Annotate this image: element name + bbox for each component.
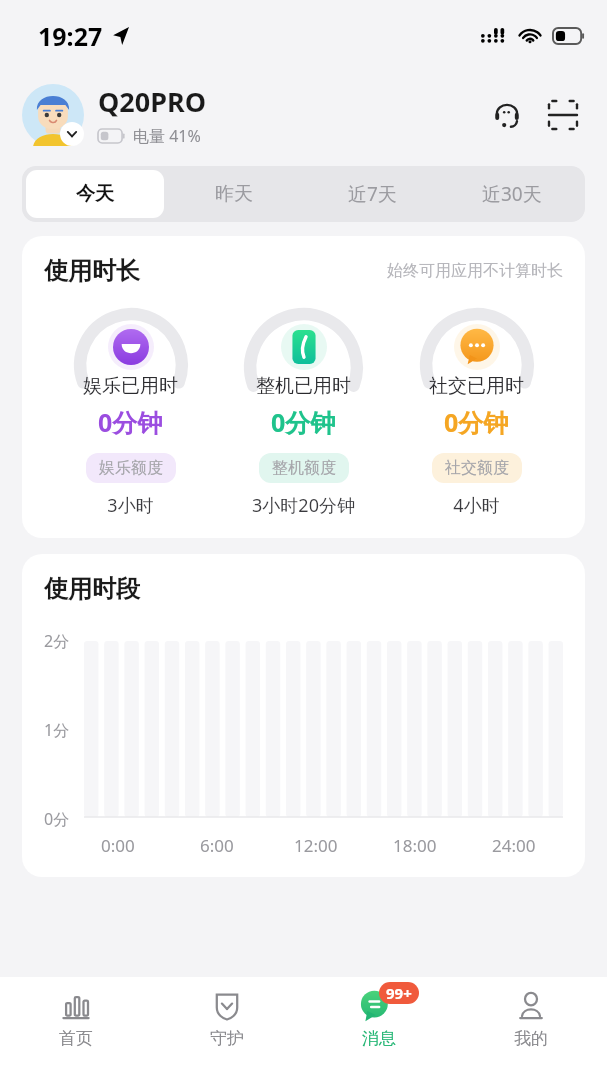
button[interactable]: Switch device	[60, 122, 84, 146]
button[interactable]: 今天	[26, 170, 164, 218]
staticText: 1分	[44, 719, 70, 741]
staticText: 0:00	[101, 834, 135, 857]
staticText: 3小时20分钟	[252, 493, 355, 518]
button[interactable]: 近7天	[303, 170, 442, 218]
staticText: 近30天	[482, 181, 542, 207]
button[interactable]: 首页	[0, 977, 151, 1080]
button[interactable]: 我的	[455, 977, 607, 1080]
staticText: 18:00	[393, 834, 437, 857]
staticText: 99+	[386, 983, 412, 1003]
staticText: Q20PRO	[98, 83, 207, 120]
staticText: 今天	[76, 182, 114, 206]
staticText: 近7天	[348, 181, 397, 207]
button[interactable]: 社交已用时	[390, 308, 563, 518]
staticText: 娱乐额度	[99, 458, 163, 478]
staticText: 娱乐已用时	[83, 374, 178, 398]
staticText: 0分钟	[98, 405, 163, 439]
button[interactable]: 守护	[151, 977, 303, 1080]
button[interactable]: Customer service	[485, 93, 529, 137]
staticText: 0分钟	[271, 405, 336, 439]
button[interactable]: 昨天	[164, 170, 303, 218]
staticText: 电量 41%	[133, 125, 201, 147]
staticText: 0分	[44, 808, 70, 830]
staticText: 始终可用应用不计算时长	[387, 261, 563, 281]
button[interactable]: 近30天	[442, 170, 581, 218]
button[interactable]: Scan	[541, 93, 585, 137]
button[interactable]: 整机已用时	[217, 308, 390, 518]
staticText: 12:00	[294, 834, 338, 857]
staticText: 4小时	[453, 493, 500, 518]
staticText: 消息	[362, 1028, 396, 1049]
staticText: 守护	[210, 1028, 244, 1049]
staticText: 整机已用时	[256, 374, 351, 398]
staticText: 使用时长	[44, 256, 140, 286]
button[interactable]: 99+	[303, 977, 455, 1080]
staticText: 19:27	[38, 19, 103, 53]
staticText: 我的	[514, 1028, 548, 1049]
staticText: 3小时	[107, 493, 154, 518]
staticText: 使用时段	[44, 574, 140, 604]
staticText: 社交已用时	[429, 374, 524, 398]
staticText: 首页	[59, 1028, 93, 1049]
staticText: 社交额度	[445, 458, 509, 478]
staticText: 整机额度	[272, 458, 336, 478]
staticText: 2分	[44, 630, 70, 652]
staticText: 0分钟	[444, 405, 509, 439]
staticText: 24:00	[492, 834, 536, 857]
staticText: 昨天	[215, 182, 253, 206]
staticText: 6:00	[200, 834, 234, 857]
button[interactable]: 娱乐已用时	[44, 308, 217, 518]
